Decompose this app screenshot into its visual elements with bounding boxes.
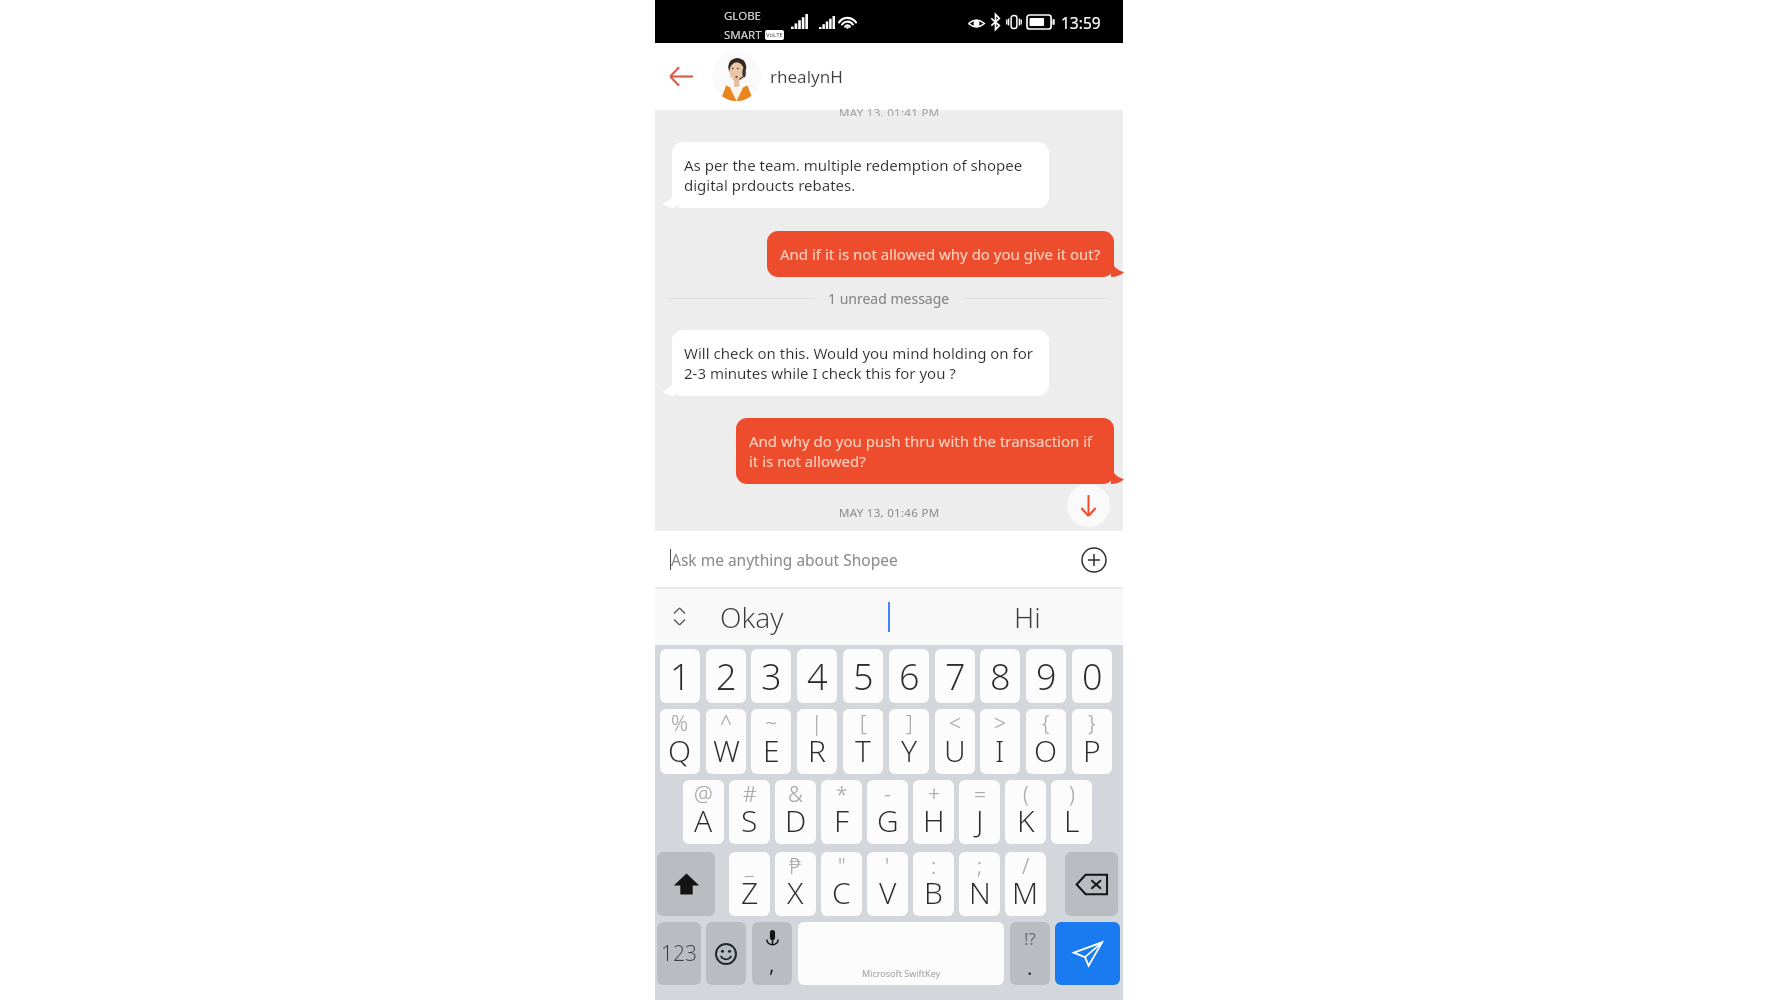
staticText: 1 — [670, 652, 691, 701]
button[interactable]: 8 — [980, 649, 1020, 703]
button[interactable]: 3 — [751, 649, 791, 703]
button[interactable]: < — [935, 709, 975, 774]
button[interactable]: Okay — [683, 588, 820, 645]
button[interactable]: Voice input — [752, 922, 792, 985]
button[interactable]: Emoji — [706, 922, 746, 985]
button[interactable]: 2 — [706, 649, 746, 703]
button[interactable]: ] — [889, 709, 929, 774]
staticText: 13:59 — [1061, 12, 1101, 33]
button[interactable]: ' — [867, 852, 908, 916]
staticText: ₱ — [789, 852, 802, 881]
button[interactable]: + — [913, 780, 954, 844]
button[interactable]: rhealynH — [707, 43, 1123, 110]
staticText: : — [931, 852, 937, 881]
button[interactable]: 7 — [935, 649, 975, 703]
button[interactable]: Backspace — [1065, 852, 1118, 916]
button[interactable]: 6 — [889, 649, 929, 703]
button[interactable]: Ask me anything about Shopee — [670, 531, 1075, 588]
button[interactable]: ( — [1005, 780, 1046, 844]
staticText: F — [834, 800, 850, 841]
button[interactable]: ^ — [706, 709, 746, 774]
staticText: < — [949, 709, 961, 738]
button[interactable]: 5 — [843, 649, 883, 703]
button[interactable]: @ — [683, 780, 724, 844]
staticText: { — [1042, 709, 1050, 738]
staticText: I — [995, 730, 1005, 771]
staticText: Hi — [1014, 598, 1041, 636]
button[interactable]: : — [913, 852, 954, 916]
staticText: D — [785, 800, 807, 841]
staticText: Q — [668, 730, 692, 771]
button[interactable]: # — [729, 780, 770, 844]
staticText: MAY 13, 01:46 PM — [839, 505, 940, 521]
button[interactable]: Microsoft SwiftKey — [798, 922, 1004, 985]
button[interactable]: | — [797, 709, 837, 774]
staticText: 2 — [716, 652, 737, 701]
button[interactable]: - — [867, 780, 908, 844]
button[interactable]: 4 — [797, 649, 837, 703]
staticText: _ — [745, 852, 754, 881]
staticText: H — [923, 800, 945, 841]
button[interactable]: = — [959, 780, 1000, 844]
staticText: U — [944, 730, 966, 771]
staticText: Ask me anything about Shopee — [671, 549, 898, 570]
staticText: } — [1088, 709, 1096, 738]
staticText: 1 unread message — [828, 289, 950, 308]
button[interactable]: Hi — [958, 588, 1096, 645]
staticText: | — [811, 709, 823, 738]
button[interactable]: ) — [1051, 780, 1092, 844]
button[interactable]: ~ — [751, 709, 791, 774]
staticText: J — [976, 800, 984, 841]
staticText: ~ — [765, 709, 777, 738]
button[interactable]: { — [1026, 709, 1066, 774]
button[interactable]: } — [1072, 709, 1112, 774]
staticText: 123 — [661, 939, 697, 968]
button[interactable]: / — [1005, 852, 1046, 916]
button[interactable]: More suggestions — [664, 588, 694, 645]
staticText: ) — [1069, 780, 1075, 809]
staticText: C — [832, 872, 851, 913]
button[interactable]: * — [821, 780, 862, 844]
button[interactable]: Back — [655, 43, 707, 110]
staticText: 5 — [853, 652, 874, 701]
button[interactable]: & — [775, 780, 816, 844]
staticText: X — [787, 872, 804, 913]
button[interactable]: Shift — [657, 852, 715, 916]
staticText: S — [741, 800, 758, 841]
staticText: L — [1064, 800, 1080, 841]
button[interactable]: [ — [843, 709, 883, 774]
button[interactable]: _ — [729, 852, 770, 916]
button[interactable]: Send — [1055, 922, 1120, 985]
staticText: . — [1027, 954, 1033, 981]
button[interactable]: Add attachment — [1078, 544, 1110, 576]
staticText: , — [769, 950, 775, 979]
button[interactable]: > — [980, 709, 1020, 774]
button[interactable]: 0 — [1072, 649, 1112, 703]
staticText: And why do you push thru with the transa… — [749, 431, 1101, 471]
staticText: M — [1012, 872, 1039, 913]
staticText: rhealynH — [770, 65, 843, 88]
button[interactable]: ; — [959, 852, 1000, 916]
staticText: P — [1083, 730, 1101, 771]
staticText: O — [1034, 730, 1058, 771]
button[interactable]: 9 — [1026, 649, 1066, 703]
staticText: ^ — [720, 709, 732, 738]
staticText: Y — [901, 730, 918, 771]
staticText: 7 — [945, 652, 966, 701]
button[interactable]: Scroll to bottom — [1067, 484, 1110, 527]
button[interactable]: ₱ — [775, 852, 816, 916]
button[interactable]: 1 — [660, 649, 700, 703]
staticText: ' — [885, 852, 890, 881]
staticText: GLOBE — [724, 8, 762, 24]
button[interactable]: 123 — [657, 922, 701, 985]
button[interactable]: !? — [1010, 922, 1050, 985]
button[interactable]: % — [660, 709, 700, 774]
staticText: G — [877, 800, 899, 841]
button[interactable]: " — [821, 852, 862, 916]
staticText: VoLTE — [766, 31, 783, 39]
staticText: # — [743, 780, 757, 809]
staticText: E — [763, 730, 780, 771]
staticText: Will check on this. Would you mind holdi… — [684, 343, 1037, 383]
staticText: 0 — [1082, 652, 1103, 701]
staticText: ( — [1023, 780, 1029, 809]
